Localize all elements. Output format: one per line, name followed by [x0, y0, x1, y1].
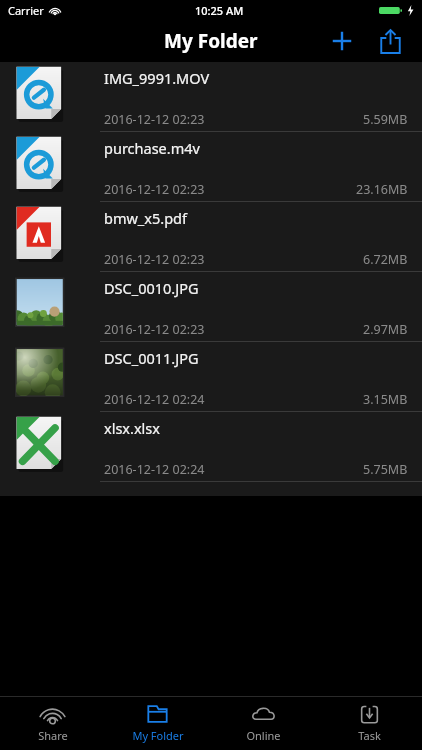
- button[interactable]: bmw_x5.pdf: [0, 202, 422, 272]
- button[interactable]: IMG_9991.MOV: [0, 62, 422, 132]
- button[interactable]: DSC_0011.JPG: [0, 342, 422, 412]
- staticText: 5.75MB: [363, 461, 408, 478]
- staticText: 3.15MB: [363, 391, 408, 408]
- staticText: xlsx.xlsx: [104, 418, 160, 438]
- staticText: bmw_x5.pdf: [104, 208, 187, 228]
- staticText: IMG_9991.MOV: [104, 68, 210, 88]
- button[interactable]: Online: [210, 696, 316, 750]
- staticText: Carrier: [8, 3, 44, 18]
- staticText: Share: [38, 728, 68, 743]
- staticText: 2016-12-12 02:23: [104, 181, 205, 198]
- button[interactable]: DSC_0010.JPG: [0, 272, 422, 342]
- staticText: 6.72MB: [363, 251, 408, 268]
- staticText: DSC_0011.JPG: [104, 348, 199, 368]
- staticText: 2016-12-12 02:23: [104, 321, 205, 338]
- staticText: My Folder: [164, 28, 258, 54]
- staticText: 2.97MB: [363, 321, 408, 338]
- button[interactable]: Task: [316, 696, 422, 750]
- button[interactable]: My Folder: [105, 696, 210, 750]
- staticText: 10:25 AM: [195, 3, 244, 18]
- staticText: 2016-12-12 02:24: [104, 391, 205, 408]
- staticText: Online: [246, 728, 281, 743]
- staticText: 5.59MB: [363, 111, 408, 128]
- button[interactable]: Share: [370, 21, 410, 61]
- staticText: 2016-12-12 02:23: [104, 251, 205, 268]
- staticText: 2016-12-12 02:23: [104, 111, 205, 128]
- button[interactable]: xlsx.xlsx: [0, 412, 422, 482]
- staticText: purchase.m4v: [104, 138, 200, 158]
- button[interactable]: Share: [0, 696, 105, 750]
- button[interactable]: Add: [322, 21, 362, 61]
- staticText: My Folder: [132, 728, 184, 743]
- staticText: 2016-12-12 02:24: [104, 461, 205, 478]
- button[interactable]: purchase.m4v: [0, 132, 422, 202]
- staticText: DSC_0010.JPG: [104, 278, 199, 298]
- staticText: 23.16MB: [356, 181, 408, 198]
- staticText: Task: [358, 728, 381, 743]
